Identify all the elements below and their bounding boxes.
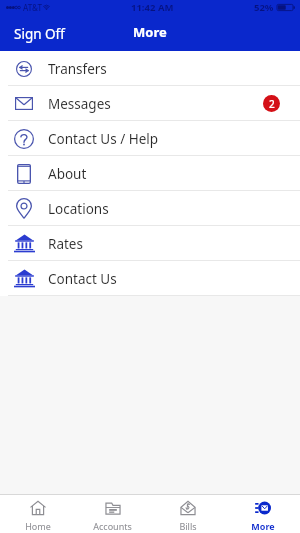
staticText: Accounts [93, 520, 132, 532]
staticText: Bills [179, 520, 197, 532]
staticText: More [133, 23, 167, 41]
button[interactable]: Bills [150, 495, 225, 533]
button[interactable]: Messages [0, 86, 300, 121]
staticText: About [48, 165, 87, 183]
staticText: Sign Off [14, 25, 65, 43]
button[interactable]: More [225, 495, 300, 533]
button[interactable]: Accounts [75, 495, 150, 533]
staticText: More [251, 520, 275, 532]
staticText: Locations [48, 200, 109, 218]
button[interactable]: Sign Off [0, 20, 99, 51]
button[interactable]: Locations [0, 191, 300, 226]
staticText: 11:42 AM [131, 1, 174, 14]
staticText: AT&T [23, 2, 42, 13]
button[interactable]: Transfers [0, 51, 300, 86]
staticText: 2 [269, 97, 275, 111]
staticText: Messages [48, 95, 111, 113]
button[interactable]: Contact Us / Help [0, 121, 300, 156]
button[interactable]: Home [0, 495, 75, 533]
staticText: Contact Us [48, 270, 117, 288]
staticText: Contact Us / Help [48, 130, 159, 148]
staticText: Rates [48, 235, 83, 253]
staticText: Home [25, 520, 51, 532]
staticText: Transfers [48, 60, 107, 78]
button[interactable]: Contact Us [0, 261, 300, 296]
button[interactable]: Rates [0, 226, 300, 261]
button[interactable]: About [0, 156, 300, 191]
staticText: 52% [254, 1, 274, 14]
